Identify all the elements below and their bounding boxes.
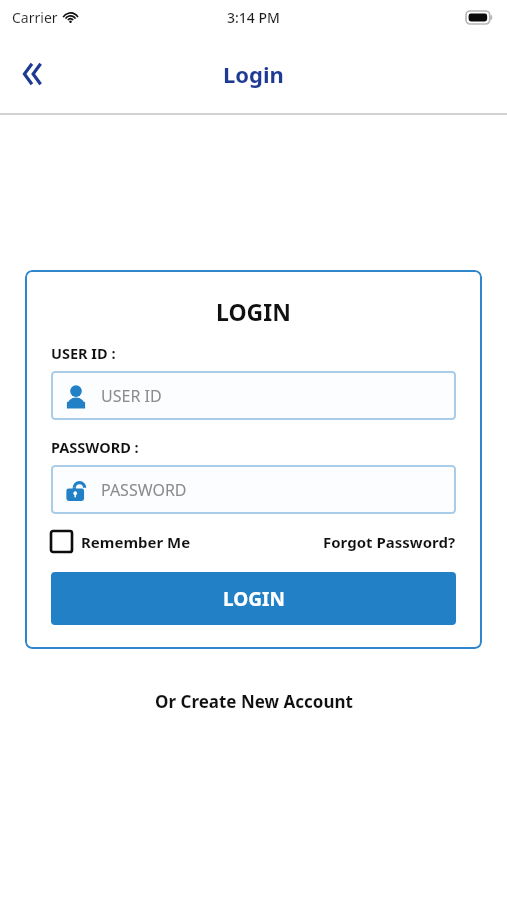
button[interactable]: Remember Me [51,531,191,552]
button[interactable]: USER ID [51,371,456,420]
staticText: Remember Me [81,532,191,552]
button[interactable]: Forgot Password? [323,532,456,552]
staticText: USER ID [101,385,162,407]
button[interactable]: PASSWORD [51,465,456,514]
staticText: PASSWORD [101,479,187,501]
button[interactable]: Or Create New Account [155,690,353,713]
staticText: Login [223,59,284,89]
button[interactable]: LOGIN [51,572,456,625]
staticText: Carrier [12,8,58,27]
button[interactable]: Back [8,48,60,100]
staticText: LOGIN [223,586,285,612]
staticText: 3:14 PM [227,8,280,27]
staticText: PASSWORD : [51,437,139,457]
staticText: LOGIN [216,296,291,327]
staticText: USER ID : [51,343,116,363]
